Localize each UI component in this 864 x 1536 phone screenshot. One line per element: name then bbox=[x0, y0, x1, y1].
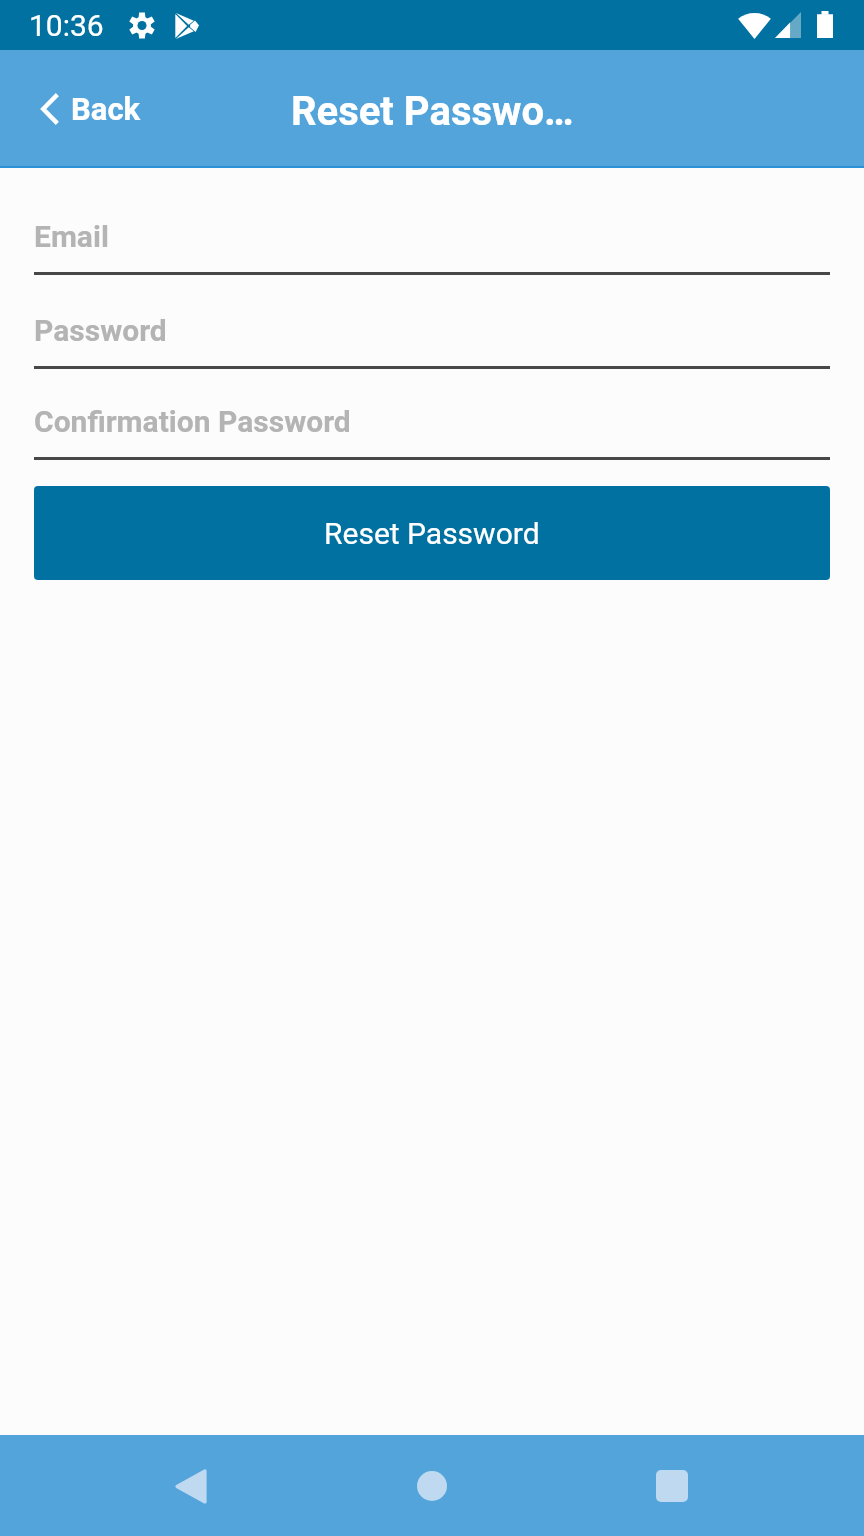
button[interactable]: Reset Password bbox=[34, 486, 830, 580]
staticText: Reset Passwo… bbox=[291, 88, 574, 135]
button[interactable]: Email bbox=[34, 219, 830, 275]
button[interactable]: Back bbox=[144, 1438, 240, 1534]
button[interactable]: Confirmation Password bbox=[34, 404, 830, 460]
staticText: Email bbox=[34, 219, 109, 254]
button[interactable]: Back bbox=[0, 50, 163, 168]
button[interactable]: Recent apps bbox=[624, 1438, 720, 1534]
button[interactable]: Password bbox=[34, 313, 830, 369]
staticText: Reset Password bbox=[324, 516, 540, 551]
staticText: 10:36 bbox=[29, 8, 104, 43]
staticText: Confirmation Password bbox=[34, 404, 351, 439]
staticText: Password bbox=[34, 313, 167, 348]
button[interactable]: Home bbox=[384, 1438, 480, 1534]
staticText: Back bbox=[71, 91, 141, 127]
